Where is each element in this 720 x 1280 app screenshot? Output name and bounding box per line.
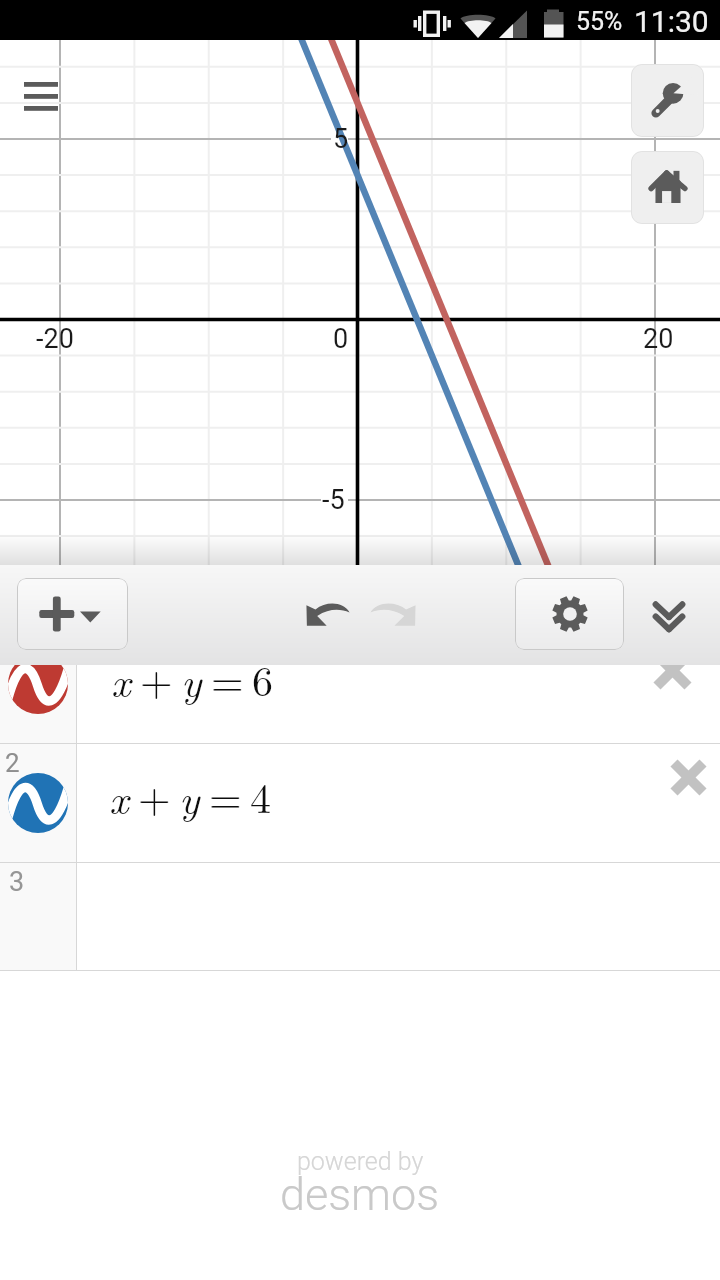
staticText: 6 [252, 665, 274, 709]
staticText: = [209, 766, 242, 826]
button[interactable]: Remove expression 1 [643, 665, 701, 699]
button[interactable]: Settings [515, 578, 624, 650]
staticText: 55% [576, 7, 623, 36]
button[interactable]: x [0, 665, 720, 743]
staticText: desmos [280, 1168, 440, 1221]
button[interactable]: Collapse panel [634, 578, 706, 650]
staticText: = [211, 665, 244, 709]
button[interactable]: Redo [362, 578, 442, 650]
staticText: powered by [297, 1147, 424, 1176]
staticText: x [109, 767, 129, 826]
staticText: y [179, 767, 200, 826]
staticText: 5 [333, 123, 349, 155]
staticText: 4 [250, 766, 272, 826]
button[interactable]: Undo [278, 578, 358, 650]
staticText: 0 [333, 323, 349, 355]
staticText: 3 [9, 866, 25, 898]
button[interactable]: Remove expression 2 [659, 748, 717, 806]
staticText: -20 [36, 323, 74, 355]
staticText: 20 [643, 323, 674, 355]
button[interactable]: Menu [16, 72, 66, 117]
staticText: y [181, 665, 202, 709]
button[interactable]: Graph settings [631, 64, 704, 137]
button[interactable]: Add expression [17, 578, 128, 650]
staticText: x [111, 665, 131, 709]
staticText: 2 [5, 748, 20, 778]
staticText: + [138, 766, 171, 826]
button[interactable]: Home [631, 151, 704, 224]
staticText: + [140, 665, 173, 709]
staticText: 11:30 [634, 4, 709, 39]
button[interactable]: 3 [0, 863, 720, 970]
button[interactable]: 2 [0, 744, 720, 862]
staticText: -5 [322, 484, 345, 516]
